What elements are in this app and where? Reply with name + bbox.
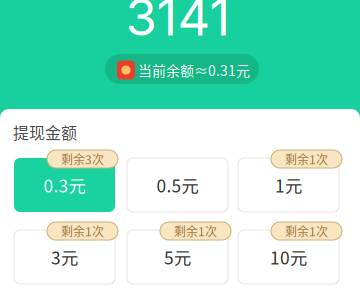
staticText: 剩余1次 bbox=[285, 150, 328, 168]
button[interactable]: 3元 bbox=[14, 230, 115, 284]
button[interactable]: 10元 bbox=[238, 230, 339, 284]
staticText: 5元 bbox=[164, 244, 191, 270]
staticText: 3元 bbox=[51, 244, 78, 270]
staticText: 1元 bbox=[275, 172, 302, 198]
staticText: 10元 bbox=[270, 244, 307, 270]
button[interactable]: 0.5元 bbox=[127, 158, 228, 212]
button[interactable]: 0.3元 bbox=[14, 158, 115, 212]
button[interactable]: 5元 bbox=[127, 230, 228, 284]
staticText: 0.3元 bbox=[43, 172, 85, 198]
staticText: 0.5元 bbox=[156, 172, 198, 198]
staticText: 剩余1次 bbox=[285, 222, 328, 240]
staticText: 提现金额 bbox=[13, 120, 77, 144]
staticText: 剩余3次 bbox=[61, 150, 104, 168]
staticText: 当前余额≈0.31元 bbox=[138, 60, 250, 80]
button[interactable]: 1元 bbox=[238, 158, 339, 212]
staticText: 剩余1次 bbox=[61, 222, 104, 240]
staticText: 3141 bbox=[125, 0, 230, 48]
staticText: 剩余1次 bbox=[174, 222, 217, 240]
